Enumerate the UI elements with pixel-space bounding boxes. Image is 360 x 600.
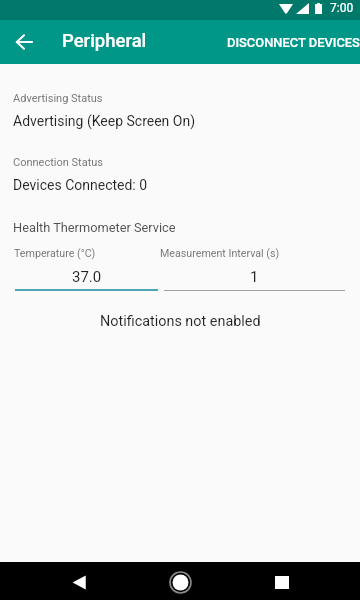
staticText: Health Thermometer Service [13,220,176,235]
staticText: Notifications not enabled [100,313,261,330]
staticText: Measurement Interval (s) [160,247,280,260]
staticText: DISCONNECT DEVICES [227,35,360,50]
staticText: 1 [250,268,259,286]
button[interactable]: DISCONNECT DEVICES [226,35,360,50]
staticText: Connection Status [13,156,103,169]
staticText: Advertising Status [13,92,103,105]
button[interactable]: Navigate up [6,24,42,60]
staticText: 37.0 [72,268,102,286]
staticText: Peripheral [62,30,147,52]
staticText: Devices Connected: 0 [13,177,148,193]
button[interactable]: Home [129,565,231,600]
button[interactable]: Temperature (°C) [15,247,162,291]
staticText: 7:00 [330,1,354,15]
button[interactable]: Back [28,565,129,600]
staticText: Temperature (°C) [14,247,96,260]
button[interactable]: Measurement Interval (s) [164,247,345,291]
staticText: Advertising (Keep Screen On) [13,113,196,129]
button[interactable]: Recent apps [231,565,332,600]
